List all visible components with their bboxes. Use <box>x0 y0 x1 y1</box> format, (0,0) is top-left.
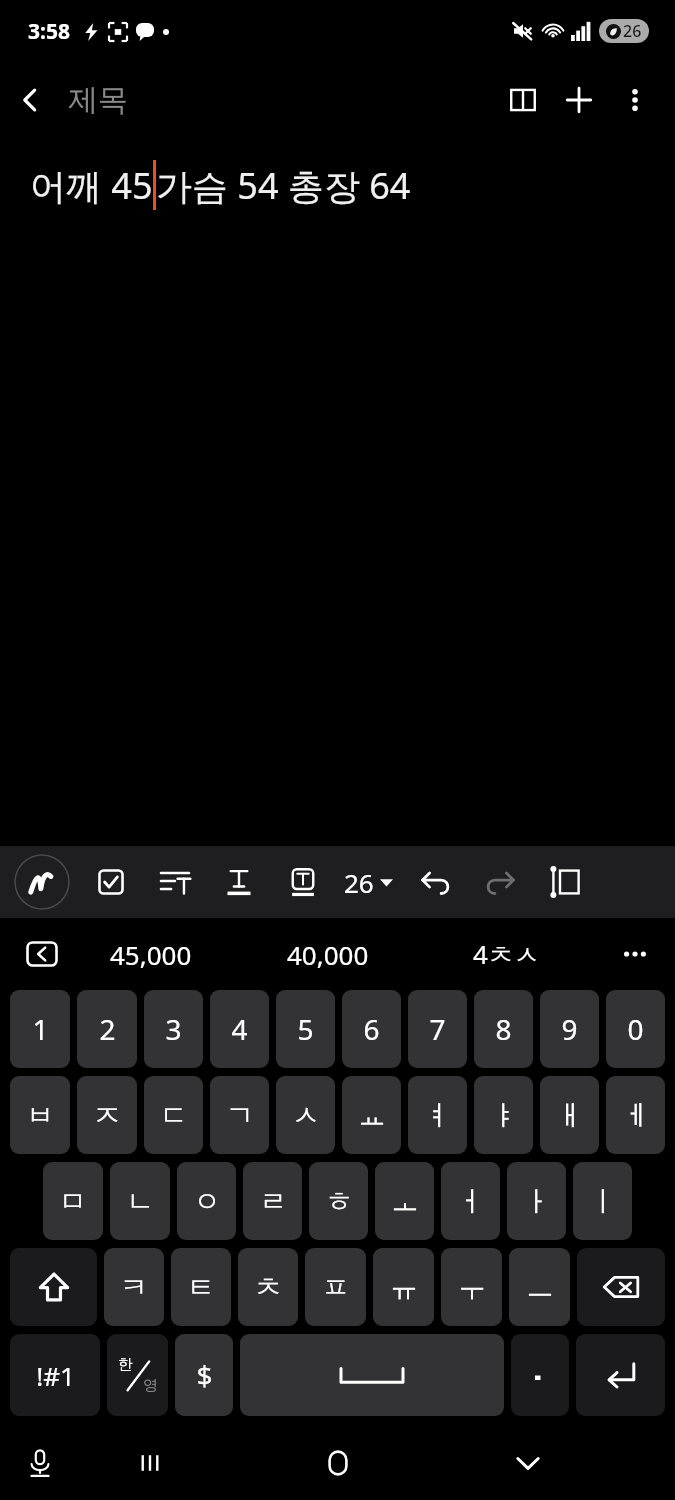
staticText: ㅓ <box>457 1184 485 1219</box>
button[interactable]: Undo <box>413 859 459 905</box>
button[interactable]: ㅌ <box>171 1248 231 1326</box>
staticText: ㅂ <box>26 1098 54 1133</box>
button[interactable]: Recents <box>126 1439 174 1487</box>
button[interactable]: 0 <box>606 990 665 1068</box>
button[interactable]: Paragraph style <box>152 859 198 905</box>
staticText: ㄷ <box>160 1098 188 1133</box>
button[interactable]: Add <box>551 72 607 128</box>
button[interactable]: 4ㅊㅅ <box>417 918 595 990</box>
button[interactable]: Reading view <box>495 72 551 128</box>
button[interactable]: ㅔ <box>606 1076 665 1154</box>
button[interactable]: Voice input <box>16 1439 64 1487</box>
staticText: 어깨 45 <box>30 161 153 210</box>
button[interactable]: Period <box>511 1334 569 1416</box>
staticText: ㅈ <box>93 1098 121 1133</box>
staticText: ㅗ <box>391 1184 419 1219</box>
button[interactable]: ㄹ <box>243 1162 302 1240</box>
staticText: ㄱ <box>226 1098 254 1133</box>
button[interactable]: ㅐ <box>540 1076 599 1154</box>
button[interactable]: 4 <box>210 990 269 1068</box>
button[interactable]: ㅏ <box>507 1162 566 1240</box>
button[interactable]: ㅠ <box>373 1248 434 1326</box>
staticText: 4ㅊㅅ <box>473 936 540 972</box>
button[interactable]: Redo <box>477 859 523 905</box>
button[interactable]: Language <box>107 1334 168 1416</box>
button[interactable]: Expand toolbar <box>22 934 62 974</box>
button[interactable]: Text style <box>216 859 262 905</box>
staticText: ㅜ <box>458 1270 486 1305</box>
button[interactable]: $ <box>175 1334 233 1416</box>
staticText: 3 <box>165 1010 182 1048</box>
staticText: ㅡ <box>526 1270 554 1305</box>
staticText: ㅅ <box>292 1098 320 1133</box>
button[interactable]: 2 <box>77 990 137 1068</box>
button[interactable]: ㅗ <box>375 1162 434 1240</box>
button[interactable]: ㅊ <box>238 1248 298 1326</box>
button[interactable]: ㅎ <box>309 1162 368 1240</box>
staticText: ㅁ <box>59 1184 87 1219</box>
button[interactable]: ㅍ <box>305 1248 366 1326</box>
button[interactable]: Handwriting <box>14 854 70 910</box>
staticText: ㅌ <box>187 1270 215 1305</box>
button[interactable]: 8 <box>474 990 533 1068</box>
button[interactable]: !#1 <box>10 1334 100 1416</box>
button[interactable]: ㅕ <box>408 1076 467 1154</box>
button[interactable]: More options <box>607 72 663 128</box>
button[interactable]: 3 <box>144 990 203 1068</box>
button[interactable]: ㅣ <box>573 1162 632 1240</box>
button[interactable]: 6 <box>342 990 401 1068</box>
staticText: 40,000 <box>287 937 369 972</box>
staticText: 4 <box>231 1010 248 1048</box>
button[interactable]: ㄷ <box>144 1076 203 1154</box>
button[interactable]: 26 <box>338 865 399 900</box>
button[interactable]: ㅈ <box>77 1076 137 1154</box>
button[interactable]: ㅛ <box>342 1076 401 1154</box>
staticText: ㅏ <box>523 1184 551 1219</box>
button[interactable]: ㅂ <box>10 1076 70 1154</box>
button[interactable]: Enter <box>576 1334 665 1416</box>
staticText: 2 <box>99 1010 116 1048</box>
staticText: ㅔ <box>622 1098 650 1133</box>
button[interactable]: ㅋ <box>104 1248 164 1326</box>
staticText: 가슴 54 총장 64 <box>156 161 411 210</box>
button[interactable]: ㄴ <box>110 1162 170 1240</box>
button[interactable]: Backspace <box>577 1248 665 1326</box>
button[interactable]: Text box <box>280 859 326 905</box>
button[interactable]: Home <box>314 1439 362 1487</box>
button[interactable]: ㅑ <box>474 1076 533 1154</box>
staticText: ㅊ <box>254 1270 282 1305</box>
staticText: 45,000 <box>110 937 192 972</box>
button[interactable]: ㄱ <box>210 1076 269 1154</box>
button[interactable]: Space <box>240 1334 504 1416</box>
button[interactable]: 7 <box>408 990 467 1068</box>
button[interactable]: Shift <box>10 1248 97 1326</box>
button[interactable]: ㅜ <box>441 1248 502 1326</box>
button[interactable]: 40,000 <box>239 918 417 990</box>
button[interactable]: ㅅ <box>276 1076 335 1154</box>
button[interactable]: More suggestions <box>595 918 675 990</box>
staticText: 제목 <box>68 81 128 119</box>
staticText: 8 <box>495 1010 512 1048</box>
button[interactable]: 5 <box>276 990 335 1068</box>
button[interactable]: 9 <box>540 990 599 1068</box>
button[interactable]: Insert <box>541 860 585 904</box>
staticText: ㅕ <box>424 1098 452 1133</box>
button[interactable]: Checklist <box>88 859 134 905</box>
staticText: 26 <box>344 865 374 900</box>
staticText: ㅐ <box>556 1098 584 1133</box>
staticText: 5 <box>297 1010 314 1048</box>
button[interactable]: ㅓ <box>441 1162 500 1240</box>
staticText: 26 <box>623 20 642 42</box>
staticText: ㄹ <box>259 1184 287 1219</box>
staticText: ㅛ <box>358 1098 386 1133</box>
button[interactable]: Hide keyboard <box>504 1439 552 1487</box>
staticText: !#1 <box>36 1358 75 1393</box>
staticText: $ <box>196 1356 213 1394</box>
button[interactable]: ㅇ <box>177 1162 236 1240</box>
button[interactable]: ㅡ <box>509 1248 570 1326</box>
button[interactable]: ㅁ <box>43 1162 103 1240</box>
button[interactable]: Back <box>0 70 60 130</box>
button[interactable]: 1 <box>10 990 70 1068</box>
button[interactable]: 45,000 <box>62 918 239 990</box>
staticText: 한 <box>118 1355 133 1374</box>
